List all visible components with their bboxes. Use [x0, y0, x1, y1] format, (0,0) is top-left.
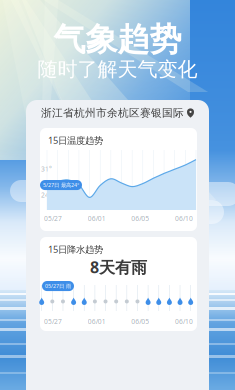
- staticText: 05/27: [44, 317, 62, 326]
- staticText: 06/01: [88, 214, 106, 223]
- staticText: 15日温度趋势: [48, 134, 103, 146]
- staticText: 06/05: [131, 214, 149, 223]
- staticText: 31°: [41, 165, 52, 173]
- staticText: 气象趋势: [53, 20, 181, 59]
- staticText: 随时了解天气变化: [37, 57, 197, 82]
- staticText: 06/01: [88, 317, 106, 326]
- staticText: 15日降水趋势: [48, 243, 103, 255]
- staticText: 24°: [41, 191, 52, 199]
- staticText: 浙江省杭州市余杭区赛银国际: [41, 106, 184, 119]
- staticText: 06/10: [175, 317, 193, 326]
- staticText: 5/27日 最高24°: [43, 181, 79, 189]
- staticText: 06/05: [131, 317, 149, 326]
- staticText: 8天有雨: [90, 256, 147, 278]
- staticText: 05/27日 雨: [45, 282, 71, 290]
- staticText: 05/27: [44, 214, 62, 223]
- staticText: 06/10: [175, 214, 193, 223]
